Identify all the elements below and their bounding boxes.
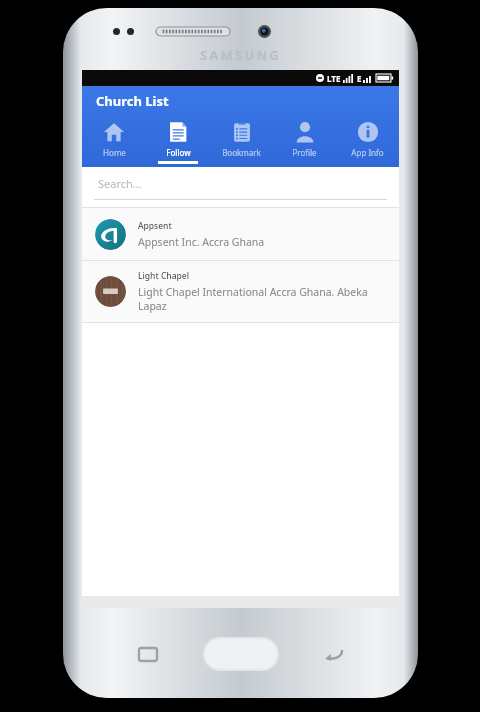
- staticText: Home: [103, 147, 126, 158]
- button[interactable]: Profile: [273, 115, 336, 167]
- button[interactable]: Home: [203, 637, 279, 671]
- staticText: Light Chapel: [138, 270, 189, 282]
- other: Recent apps: [139, 648, 157, 661]
- staticText: Bookmark: [222, 147, 261, 158]
- button[interactable]: App Info: [336, 115, 399, 167]
- staticText: Appsent: [138, 220, 172, 232]
- staticText: App Info: [351, 147, 384, 158]
- button[interactable]: Light Chapel: [82, 261, 399, 322]
- staticText: Church List: [96, 92, 169, 110]
- staticText: E: [357, 73, 362, 84]
- staticText: Profile: [292, 147, 317, 158]
- staticText: Follow: [166, 147, 191, 158]
- button[interactable]: Follow: [146, 115, 210, 167]
- button[interactable]: Bookmark: [210, 115, 273, 167]
- staticText: Light Chapel International Accra Ghana. …: [138, 285, 386, 313]
- other: Back: [325, 648, 343, 661]
- staticText: Search...: [98, 176, 142, 191]
- button[interactable]: Home: [82, 115, 146, 167]
- staticText: LTE: [327, 73, 341, 84]
- button[interactable]: Search...: [82, 167, 399, 199]
- button[interactable]: Appsent: [82, 208, 399, 260]
- staticText: SAMSUNG: [200, 46, 281, 64]
- staticText: Appsent Inc. Accra Ghana: [138, 235, 265, 249]
